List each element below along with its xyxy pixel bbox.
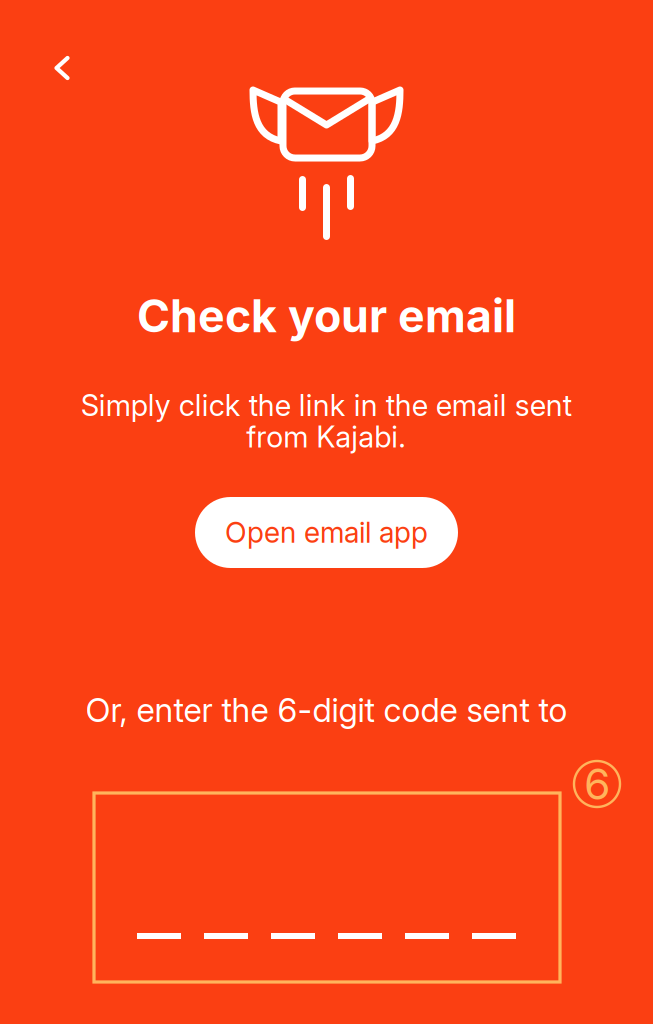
staticText: Simply click the link in the email sent …	[80, 387, 571, 454]
button[interactable]: Open email app	[195, 497, 458, 568]
button[interactable]: Back	[33, 39, 91, 97]
staticText: Check your email	[137, 289, 516, 343]
staticText: Open email app	[225, 515, 428, 550]
staticText: 6	[584, 758, 610, 810]
staticText: Or, enter the 6-digit code sent to	[85, 690, 567, 730]
